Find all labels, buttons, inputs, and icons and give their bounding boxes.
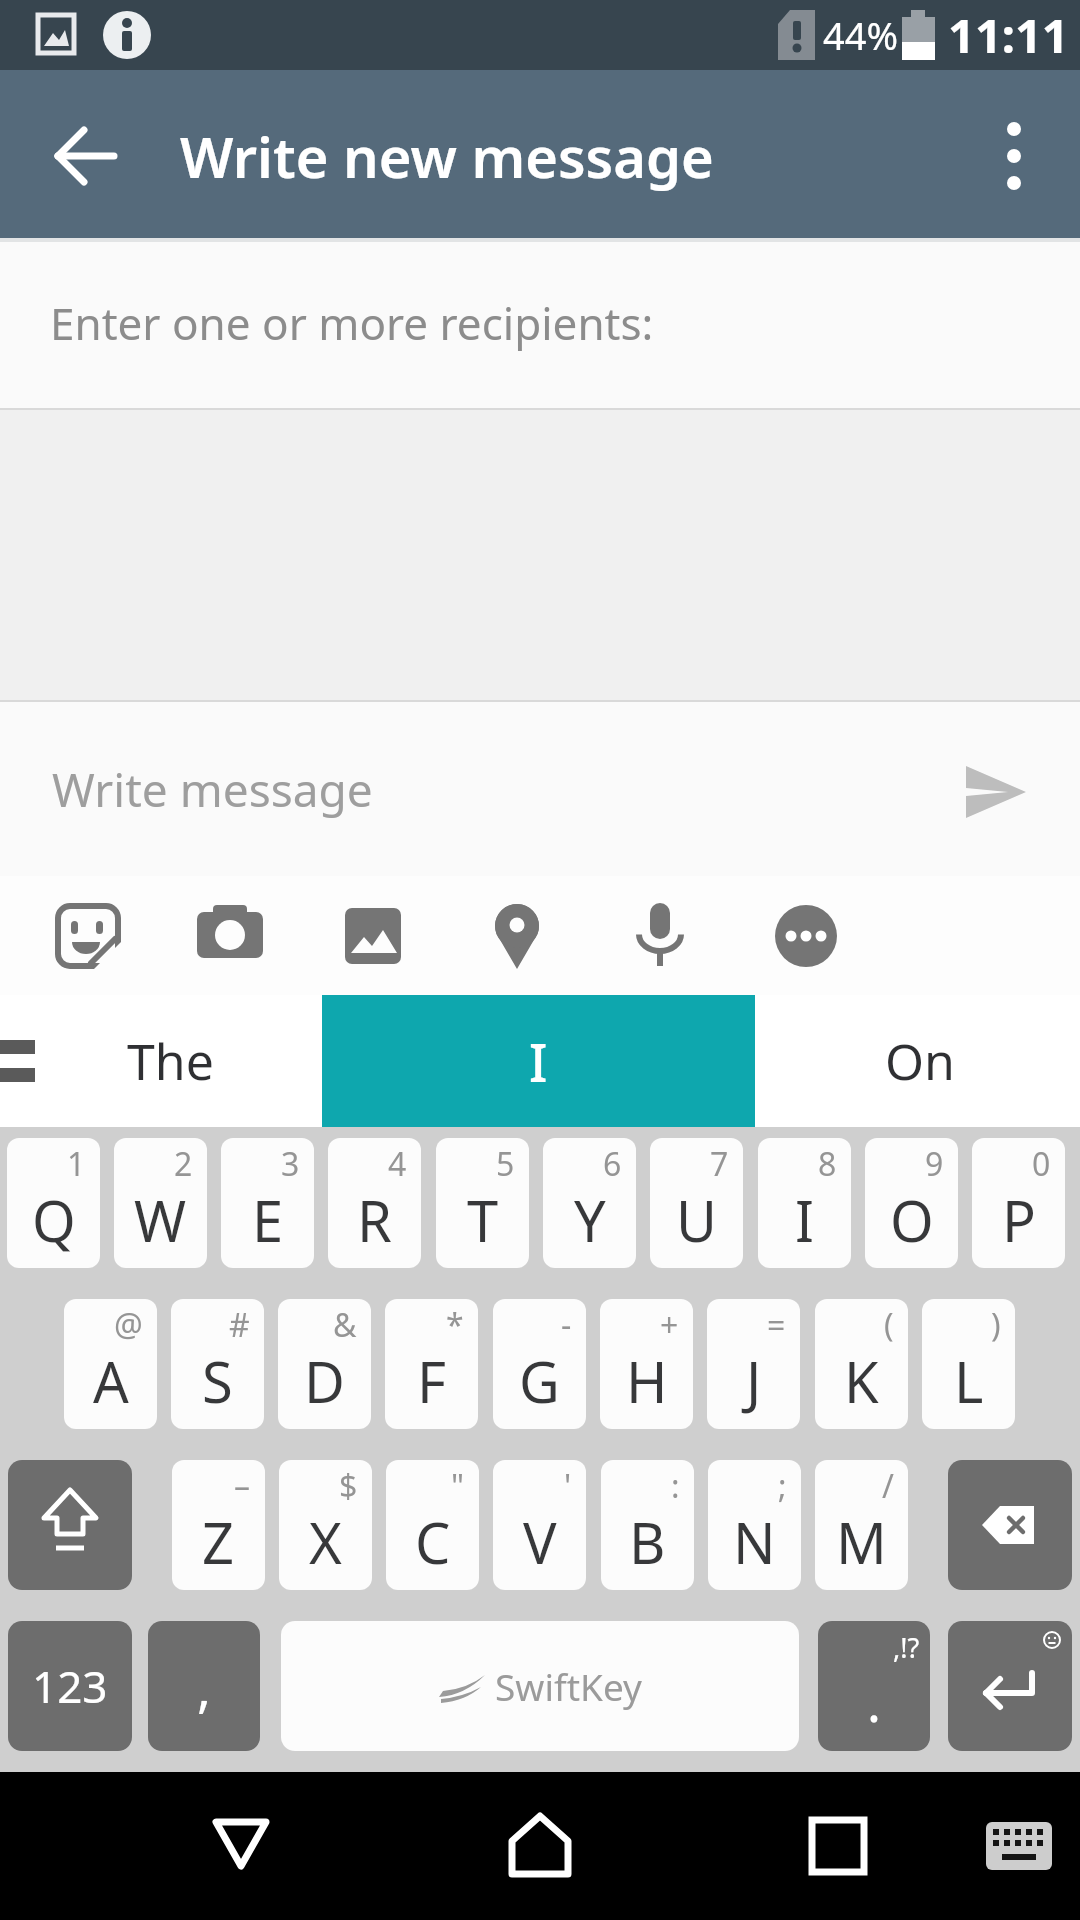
staticText: Write message [52, 758, 373, 821]
staticText: * [446, 1303, 464, 1347]
staticText: : [671, 1464, 680, 1508]
staticText: , [197, 1651, 211, 1722]
button[interactable] [328, 890, 418, 980]
staticText: 2 [174, 1142, 193, 1186]
staticText: 9 [925, 1142, 944, 1186]
button[interactable]: J [707, 1299, 800, 1429]
staticText: Q [32, 1182, 76, 1258]
button[interactable]: E [221, 1138, 314, 1268]
button[interactable] [761, 890, 851, 980]
button[interactable] [780, 1790, 900, 1902]
button[interactable]: M [815, 1460, 908, 1590]
staticText: 1 [67, 1142, 86, 1186]
staticText: On [885, 1027, 955, 1095]
button[interactable]: X [279, 1460, 372, 1590]
button[interactable] [180, 1790, 300, 1902]
button[interactable] [480, 1790, 600, 1902]
staticText: F [417, 1343, 447, 1419]
button[interactable]: D [278, 1299, 371, 1429]
button[interactable] [970, 110, 1062, 202]
button[interactable]: R [328, 1138, 421, 1268]
staticText: C [415, 1504, 451, 1580]
button[interactable]: F [385, 1299, 478, 1429]
button[interactable]: I [758, 1138, 851, 1268]
staticText: P [1002, 1182, 1036, 1258]
staticText: G [519, 1343, 560, 1419]
staticText: SwiftKey [495, 1661, 642, 1711]
staticText: 44% [823, 9, 899, 61]
button[interactable] [8, 1460, 132, 1590]
staticText: – [234, 1464, 251, 1508]
staticText: U [676, 1182, 717, 1258]
button[interactable]: 123 [8, 1621, 132, 1751]
staticText: 8 [818, 1142, 837, 1186]
button[interactable]: The [60, 995, 280, 1127]
staticText: 123 [32, 1656, 108, 1716]
staticText: 5 [496, 1142, 515, 1186]
staticText: Write new message [180, 118, 714, 194]
staticText: - [561, 1303, 572, 1347]
staticText: . [867, 1666, 881, 1737]
button[interactable]: SwiftKey [281, 1621, 799, 1751]
button[interactable]: S [171, 1299, 264, 1429]
button[interactable]: V [493, 1460, 586, 1590]
button[interactable]: L [922, 1299, 1015, 1429]
button[interactable]: N [708, 1460, 801, 1590]
button[interactable] [615, 890, 705, 980]
staticText: Y [574, 1182, 606, 1258]
button[interactable] [472, 890, 562, 980]
staticText: ; [778, 1464, 787, 1508]
button[interactable]: H [600, 1299, 693, 1429]
staticText: 0 [1032, 1142, 1051, 1186]
button[interactable] [40, 110, 132, 202]
staticText: S [202, 1343, 233, 1419]
button[interactable] [948, 1460, 1072, 1590]
button[interactable]: W [114, 1138, 207, 1268]
staticText: L [954, 1343, 984, 1419]
staticText: " [451, 1464, 465, 1508]
staticText: I [529, 1026, 548, 1097]
staticText: # [229, 1303, 250, 1347]
staticText: Enter one or more recipients: [50, 293, 654, 353]
staticText: = [767, 1303, 786, 1347]
staticText: D [304, 1343, 345, 1419]
staticText: E [252, 1182, 284, 1258]
button[interactable] [960, 1790, 1080, 1902]
button[interactable]: K [815, 1299, 908, 1429]
staticText: ,!? [893, 1629, 920, 1666]
button[interactable]: G [493, 1299, 586, 1429]
button[interactable]: . [818, 1621, 930, 1751]
button[interactable]: Z [172, 1460, 265, 1590]
button[interactable]: U [650, 1138, 743, 1268]
staticText: 3 [281, 1142, 300, 1186]
button[interactable]: On [800, 995, 1040, 1127]
staticText: + [660, 1303, 679, 1347]
staticText: V [523, 1504, 557, 1580]
staticText: @ [114, 1303, 143, 1347]
staticText: T [467, 1182, 499, 1258]
staticText: J [746, 1343, 762, 1419]
button[interactable]: T [436, 1138, 529, 1268]
button[interactable]: Y [543, 1138, 636, 1268]
button[interactable]: , [148, 1621, 260, 1751]
staticText: 6 [603, 1142, 622, 1186]
staticText: & [333, 1303, 357, 1347]
staticText: The [127, 1027, 214, 1095]
staticText: ' [564, 1464, 572, 1508]
button[interactable]: O [865, 1138, 958, 1268]
button[interactable] [950, 752, 1040, 828]
button[interactable]: B [601, 1460, 694, 1590]
button[interactable]: C [386, 1460, 479, 1590]
button[interactable]: I [322, 995, 755, 1127]
staticText: O [890, 1182, 934, 1258]
button[interactable]: P [972, 1138, 1065, 1268]
button[interactable]: Q [7, 1138, 100, 1268]
staticText: X [309, 1504, 342, 1580]
button[interactable]: A [64, 1299, 157, 1429]
button[interactable] [185, 890, 275, 980]
staticText: B [629, 1504, 666, 1580]
staticText: N [733, 1504, 776, 1580]
button[interactable] [43, 890, 133, 980]
button[interactable] [948, 1621, 1072, 1751]
staticText: K [844, 1343, 879, 1419]
